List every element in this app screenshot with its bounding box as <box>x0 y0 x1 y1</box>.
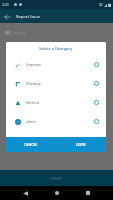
staticText: DONE <box>76 142 86 147</box>
staticText: Electrical <box>26 101 40 105</box>
staticText: CANCEL <box>24 142 38 147</box>
staticText: 4G <box>99 3 103 7</box>
button[interactable]: SUBMIT <box>44 174 69 183</box>
button[interactable]: CANCEL <box>6 142 56 147</box>
button[interactable]: Recents <box>81 186 95 200</box>
button[interactable]: Back <box>18 186 32 200</box>
button[interactable]: DONE <box>56 142 106 147</box>
button[interactable]: Electrical <box>6 93 106 112</box>
staticText: 2:32 <box>2 2 9 7</box>
button[interactable]: Carpentry <box>6 55 106 74</box>
button[interactable]: Back <box>0 10 13 23</box>
staticText: Carpentry <box>26 63 41 67</box>
button[interactable]: others <box>6 112 106 131</box>
button[interactable]: Home <box>50 186 64 200</box>
button[interactable]: Plumbing <box>6 74 106 93</box>
staticText: others <box>26 120 36 124</box>
staticText: Plumbing <box>26 82 41 86</box>
staticText: SUBMIT <box>50 176 63 181</box>
staticText: Report Issue <box>16 14 41 19</box>
staticText: Category <box>12 31 26 35</box>
staticText: Select a Category <box>39 46 73 51</box>
